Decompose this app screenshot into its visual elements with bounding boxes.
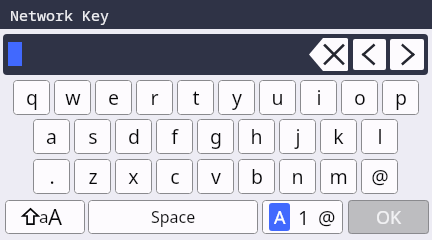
- button[interactable]: Shift, switch letter case: [5, 200, 85, 234]
- button[interactable]: e: [95, 80, 132, 115]
- button[interactable]: b: [238, 159, 275, 194]
- staticText: z: [88, 163, 98, 190]
- staticText: 1: [298, 204, 310, 231]
- button[interactable]: t: [177, 80, 214, 115]
- staticText: c: [170, 163, 180, 190]
- staticText: r: [150, 84, 159, 111]
- staticText: q: [26, 84, 38, 111]
- staticText: n: [291, 163, 304, 190]
- staticText: Space: [151, 206, 196, 228]
- button[interactable]: h: [238, 119, 275, 154]
- staticText: y: [232, 84, 242, 111]
- staticText: w: [65, 84, 81, 111]
- button[interactable]: l: [361, 119, 398, 154]
- button[interactable]: j: [279, 119, 316, 154]
- button[interactable]: .: [33, 159, 70, 194]
- staticText: b: [251, 163, 263, 190]
- staticText: h: [250, 123, 263, 150]
- button[interactable]: c: [156, 159, 193, 194]
- button[interactable]: r: [136, 80, 173, 115]
- staticText: a: [46, 123, 57, 150]
- staticText: A: [48, 201, 63, 231]
- staticText: .: [49, 163, 55, 190]
- button[interactable]: u: [259, 80, 296, 115]
- button[interactable]: f: [156, 119, 193, 154]
- button[interactable]: y: [218, 80, 255, 115]
- button[interactable]: A: [262, 200, 343, 234]
- button[interactable]: Move cursor left: [353, 39, 386, 70]
- button[interactable]: x: [115, 159, 152, 194]
- staticText: f: [171, 123, 178, 150]
- staticText: d: [128, 123, 140, 150]
- button[interactable]: OK: [348, 200, 429, 234]
- button[interactable]: Move cursor right: [390, 39, 424, 70]
- button[interactable]: z: [74, 159, 111, 194]
- staticText: u: [271, 84, 284, 111]
- button[interactable]: k: [320, 119, 357, 154]
- staticText: m: [329, 163, 348, 190]
- staticText: k: [333, 123, 344, 150]
- staticText: @: [371, 163, 389, 190]
- staticText: a: [39, 205, 49, 228]
- button[interactable]: s: [74, 119, 111, 154]
- button[interactable]: d: [115, 119, 152, 154]
- staticText: @: [318, 204, 336, 231]
- button[interactable]: w: [54, 80, 91, 115]
- button[interactable]: v: [197, 159, 234, 194]
- staticText: OK: [376, 205, 402, 230]
- button[interactable]: a: [33, 119, 70, 154]
- staticText: e: [108, 84, 119, 111]
- button[interactable]: @: [361, 159, 398, 194]
- staticText: Network Key: [10, 5, 110, 25]
- staticText: s: [88, 123, 98, 150]
- staticText: p: [395, 84, 407, 111]
- staticText: l: [377, 123, 383, 150]
- staticText: j: [295, 123, 301, 150]
- staticText: v: [211, 163, 221, 190]
- staticText: o: [354, 84, 366, 111]
- button[interactable]: [3, 34, 428, 75]
- button[interactable]: q: [13, 80, 50, 115]
- staticText: g: [210, 123, 222, 150]
- button[interactable]: Space: [88, 200, 258, 234]
- button[interactable]: m: [320, 159, 357, 194]
- button[interactable]: p: [382, 80, 419, 115]
- button[interactable]: Backspace: [309, 38, 348, 71]
- staticText: A: [274, 205, 286, 230]
- button[interactable]: g: [197, 119, 234, 154]
- button[interactable]: n: [279, 159, 316, 194]
- staticText: i: [316, 84, 322, 111]
- staticText: x: [128, 163, 139, 190]
- staticText: t: [192, 84, 200, 111]
- button[interactable]: o: [341, 80, 378, 115]
- button[interactable]: i: [300, 80, 337, 115]
